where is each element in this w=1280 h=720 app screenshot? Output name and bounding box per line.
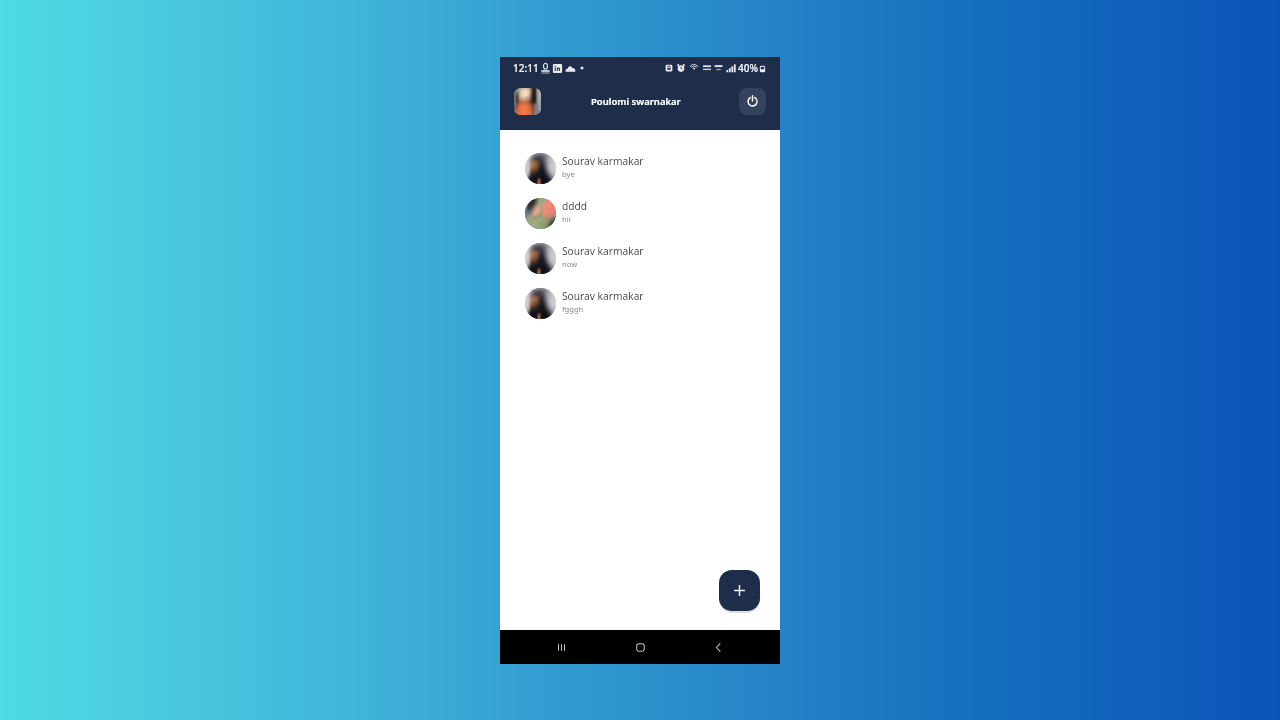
button[interactable]: Profile photo — [514, 88, 541, 115]
button[interactable]: Sourav karmakar — [500, 281, 780, 326]
button[interactable]: Home — [594, 640, 687, 655]
button[interactable]: Sourav karmakar — [500, 146, 780, 191]
button[interactable]: Sourav karmakar — [500, 236, 780, 281]
staticText: Sourav karmakar — [562, 154, 644, 168]
button[interactable]: Back — [687, 640, 780, 655]
button[interactable]: Recents — [500, 640, 594, 655]
staticText: Sourav karmakar — [562, 244, 644, 258]
staticText: fgggh — [562, 304, 584, 314]
button[interactable]: New chat — [719, 570, 760, 611]
staticText: bye — [562, 169, 575, 179]
staticText: hii — [562, 214, 571, 224]
staticText: Poulomi swarnakar — [591, 95, 681, 108]
staticText: 12:11 — [513, 61, 539, 75]
staticText: Sourav karmakar — [562, 289, 644, 303]
staticText: dddd — [562, 199, 588, 213]
staticText: now — [562, 259, 578, 269]
button[interactable]: dddd — [500, 191, 780, 236]
staticText: 40% — [738, 61, 758, 75]
button[interactable]: Logout — [739, 88, 766, 115]
